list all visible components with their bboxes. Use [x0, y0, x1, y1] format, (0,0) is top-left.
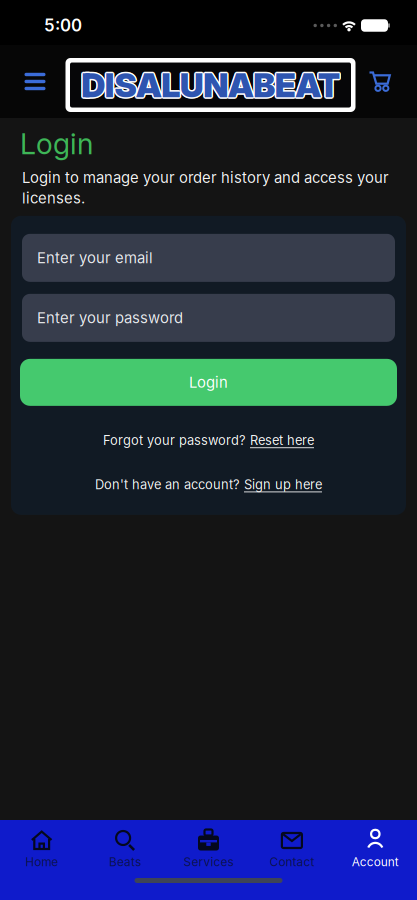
- staticText: Enter your email: [37, 249, 153, 267]
- staticText: DISALUNABEAT: [81, 65, 340, 105]
- staticText: Services: [183, 855, 233, 869]
- staticText: Beats: [109, 855, 141, 869]
- button[interactable]: Enter your password: [22, 294, 395, 342]
- staticText: DISALUNABEAT: [82, 64, 341, 104]
- button[interactable]: Services: [167, 826, 250, 872]
- button[interactable]: Home: [0, 826, 83, 872]
- staticText: DISALUNABEAT: [80, 64, 339, 104]
- staticText: licenses.: [22, 189, 85, 207]
- staticText: DISALUNABEAT: [81, 64, 340, 103]
- staticText: Contact: [269, 855, 314, 869]
- button[interactable]: Enter your email: [22, 234, 395, 282]
- button[interactable]: [17, 63, 53, 99]
- button[interactable]: Contact: [250, 826, 334, 872]
- staticText: DISALUNABEAT: [80, 65, 338, 105]
- staticText: Enter your password: [37, 309, 183, 327]
- staticText: Forgot your password? Reset here: [103, 433, 314, 448]
- button[interactable]: Forgot your password? Reset here: [103, 433, 314, 448]
- staticText: Login to manage your order history and a…: [22, 169, 389, 186]
- staticText: Home: [25, 855, 58, 869]
- staticText: Login: [20, 127, 93, 161]
- staticText: DISALUNABEAT: [80, 66, 339, 106]
- button[interactable]: Account: [334, 826, 417, 872]
- button[interactable]: [368, 68, 394, 94]
- staticText: Don't have an account? Sign up here: [95, 477, 322, 492]
- staticText: Login: [189, 374, 228, 391]
- button[interactable]: Don't have an account? Sign up here: [95, 477, 322, 492]
- button[interactable]: DISALUNABEAT: [65, 54, 355, 108]
- staticText: DISALUNABEAT: [82, 66, 341, 106]
- staticText: 5:00: [44, 16, 82, 35]
- button[interactable]: Beats: [83, 826, 167, 872]
- button[interactable]: Login: [20, 359, 397, 406]
- staticText: DISALUNABEAT: [83, 65, 341, 105]
- staticText: DISALUNABEAT: [81, 67, 340, 106]
- staticText: Account: [352, 855, 399, 869]
